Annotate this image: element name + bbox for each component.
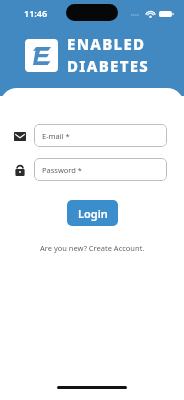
- staticText: DIABETES: [67, 56, 150, 76]
- other: Password: [13, 163, 27, 177]
- staticText: Login: [78, 206, 108, 221]
- staticText: Are you new? Create Account.: [40, 243, 145, 253]
- staticText: E-mail *: [42, 131, 70, 141]
- staticText: Password *: [42, 165, 83, 175]
- other: E-mail: [13, 129, 27, 143]
- button[interactable]: Password *: [34, 158, 167, 181]
- staticText: ENABLED: [67, 34, 146, 54]
- button[interactable]: Are you new? Create Account.: [34, 241, 151, 255]
- button[interactable]: E-mail *: [34, 124, 167, 147]
- staticText: 11:46: [24, 7, 48, 19]
- button[interactable]: Login: [67, 200, 118, 226]
